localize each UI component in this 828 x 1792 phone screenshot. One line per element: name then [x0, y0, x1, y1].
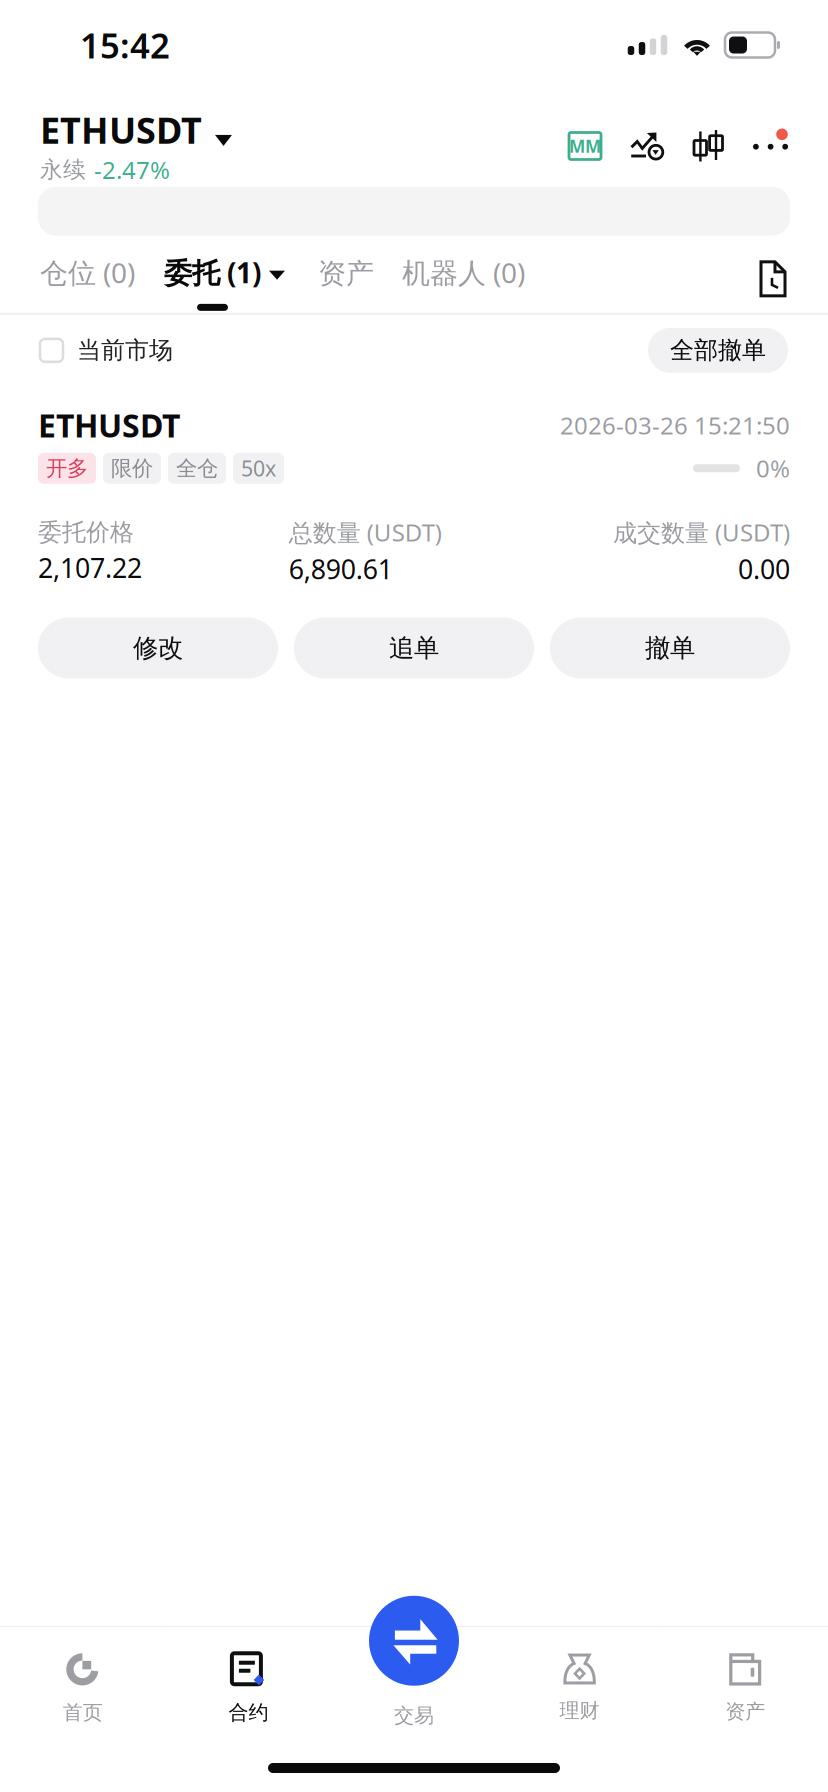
button[interactable]: K线图 [694, 129, 723, 163]
button[interactable]: 委托 (1) [164, 254, 285, 313]
staticText: 撤单 [645, 632, 695, 664]
button[interactable]: 追单 [294, 617, 534, 678]
staticText: 交易 [394, 1703, 434, 1728]
staticText: 仓位 (0) [40, 254, 135, 291]
button[interactable]: 理财 [497, 1627, 662, 1744]
staticText: 2,107.22 [38, 550, 142, 585]
staticText: 0.00 [738, 551, 790, 586]
staticText: 全仓 [176, 455, 218, 481]
button[interactable]: 当前市场 [40, 336, 173, 365]
staticText: ETHUSDT [38, 404, 180, 446]
button[interactable]: ETHUSDT [40, 106, 232, 186]
staticText: 永续 [40, 156, 86, 184]
staticText: 合约 [228, 1700, 268, 1725]
staticText: 当前市场 [77, 336, 173, 365]
staticText: 总数量 (USDT) [289, 516, 442, 548]
button[interactable]: 首页 [0, 1627, 166, 1744]
button[interactable]: 撤单 [550, 617, 790, 678]
staticText: 委托 (1) [164, 254, 261, 291]
staticText: 开多 [46, 455, 88, 481]
button[interactable]: 机器人 (0) [402, 254, 525, 313]
button[interactable]: 仓位 (0) [40, 254, 135, 313]
staticText: 2026-03-26 15:21:50 [560, 409, 790, 441]
staticText: 委托价格 [38, 517, 134, 547]
button[interactable]: 资产 [662, 1627, 828, 1744]
button[interactable]: 交易 [331, 1627, 497, 1744]
button[interactable]: 行情走势 [631, 129, 663, 163]
staticText: -2.47% [94, 154, 170, 186]
staticText: 追单 [389, 632, 439, 664]
staticText: 限价 [111, 455, 153, 481]
staticText: MM [569, 134, 601, 157]
staticText: 机器人 (0) [402, 254, 525, 291]
staticText: 50x [241, 454, 276, 482]
staticText: 成交数量 (USDT) [613, 516, 790, 548]
button[interactable]: 修改 [38, 617, 278, 678]
button[interactable]: 资产 [318, 256, 374, 313]
staticText: 资产 [318, 256, 374, 291]
button[interactable]: 交易 [369, 1596, 459, 1686]
staticText: 理财 [560, 1698, 600, 1723]
staticText: 0% [756, 452, 790, 484]
staticText: 首页 [63, 1700, 103, 1725]
staticText: 全部撤单 [670, 336, 766, 365]
button[interactable]: 更多 [753, 129, 788, 163]
button[interactable]: 合约 [166, 1627, 331, 1744]
staticText: 15:42 [80, 22, 170, 68]
staticText: ETHUSDT [40, 106, 202, 154]
button[interactable]: 历史委托 [759, 260, 788, 299]
staticText: 资产 [725, 1699, 765, 1724]
button[interactable]: 做市商 [569, 129, 601, 163]
button[interactable]: 全部撤单 [648, 328, 788, 373]
staticText: 修改 [133, 632, 183, 664]
staticText: 6,890.61 [289, 551, 393, 586]
